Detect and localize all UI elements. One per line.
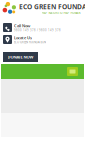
staticText: DONATE NOW	[7, 54, 33, 60]
button[interactable]: Menu	[67, 67, 78, 76]
staticText: Locate Us	[14, 35, 32, 40]
button[interactable]: Call Now	[0, 23, 85, 32]
staticText: 9800 149 378 / 9800 149 378	[14, 28, 61, 32]
button[interactable]: Locate Us	[0, 35, 85, 44]
staticText: ECO GREEN FOUNDATION	[19, 2, 85, 11]
staticText: ECO GREEN FOUNDATION	[14, 40, 46, 44]
staticText: Call Now	[14, 23, 30, 28]
staticText: HELP NATURE TO HELP HUMAN	[41, 11, 80, 15]
button[interactable]: DONATE NOW	[3, 52, 38, 62]
